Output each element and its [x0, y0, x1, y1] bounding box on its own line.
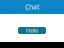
staticText: Hello	[26, 27, 38, 34]
staticText: Chat	[25, 3, 39, 11]
